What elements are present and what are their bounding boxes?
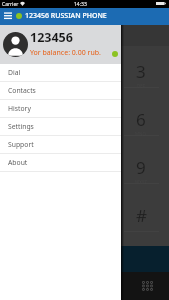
button[interactable]: Open navigation menu [0,8,16,25]
button[interactable]: 9 [113,142,169,190]
staticText: GHI [24,131,33,137]
staticText: Contacts [8,86,36,95]
button[interactable]: 4 [0,94,57,142]
staticText: # [136,204,147,227]
button[interactable]: # [113,190,169,238]
staticText: 4 [24,108,34,131]
button[interactable]: Settings [0,118,121,136]
staticText: 8 [80,156,90,179]
staticText: Yor balance: 0.00 rub. [30,48,101,58]
button[interactable]: Keypad [126,272,168,300]
button[interactable]: 6 [113,94,169,142]
button[interactable]: Dial [0,64,121,82]
button[interactable]: Support [0,136,121,154]
button[interactable]: 8 [57,142,113,190]
staticText: Support [8,140,34,149]
staticText: 123456 [30,29,73,46]
staticText: History [8,104,31,113]
button[interactable]: 3 [113,46,169,94]
button[interactable]: 7 [0,142,57,190]
staticText: 123456 RUSSIAN PHONE [25,11,107,21]
staticText: 3 [136,60,146,83]
staticText: 2 [80,60,90,83]
button[interactable]: 2 [57,46,113,94]
button[interactable]: 1 [0,46,57,94]
staticText: Settings [8,122,34,131]
staticText: Carrier [2,1,19,8]
staticText: Dial [8,68,21,77]
staticText: JKL [82,131,89,137]
button[interactable]: About [0,154,121,172]
staticText: 5 [80,108,90,131]
staticText: 6 [136,108,146,131]
button[interactable]: History [0,100,121,118]
button[interactable]: Contacts [0,82,121,100]
staticText: 7 [24,156,34,179]
staticText: 9 [136,156,146,179]
staticText: 1 [24,60,34,83]
button[interactable]: Contacts [84,272,126,300]
staticText: 14:33 [74,1,87,8]
staticText: About [8,158,28,167]
button[interactable]: 5 [57,94,113,142]
